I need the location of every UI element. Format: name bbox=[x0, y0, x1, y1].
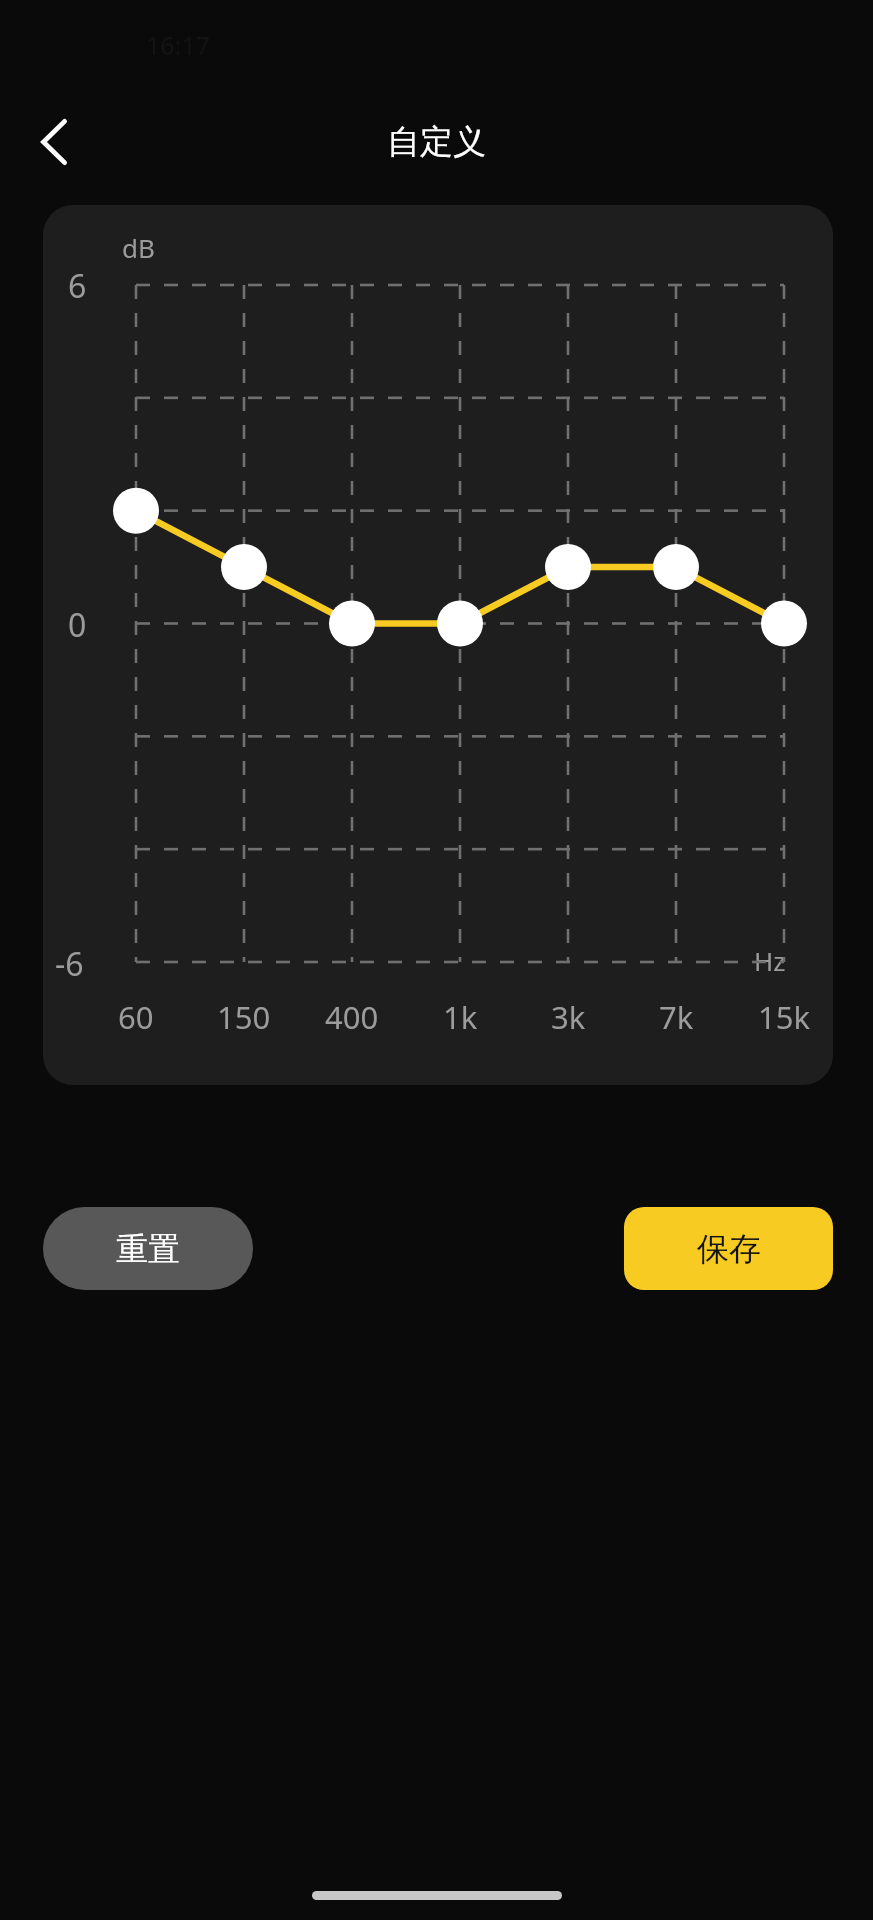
button[interactable]: 重置 bbox=[43, 1207, 253, 1290]
staticText: -6 bbox=[55, 942, 84, 986]
button[interactable]: Back bbox=[16, 103, 94, 181]
staticText: 400 bbox=[325, 996, 379, 1038]
staticText: 1k bbox=[443, 996, 478, 1038]
staticText: 7k bbox=[659, 996, 694, 1038]
staticText: 6 bbox=[68, 264, 87, 308]
staticText: 15k bbox=[758, 996, 811, 1038]
staticText: 重置 bbox=[116, 1229, 180, 1269]
staticText: 自定义 bbox=[387, 121, 486, 163]
staticText: 0 bbox=[68, 603, 87, 647]
staticText: 150 bbox=[217, 996, 271, 1038]
staticText: 60 bbox=[118, 996, 154, 1038]
staticText: 3k bbox=[551, 996, 586, 1038]
button[interactable]: 保存 bbox=[624, 1207, 833, 1290]
staticText: 保存 bbox=[697, 1229, 761, 1269]
staticText: dB bbox=[122, 230, 155, 265]
staticText: Hz bbox=[754, 943, 786, 978]
